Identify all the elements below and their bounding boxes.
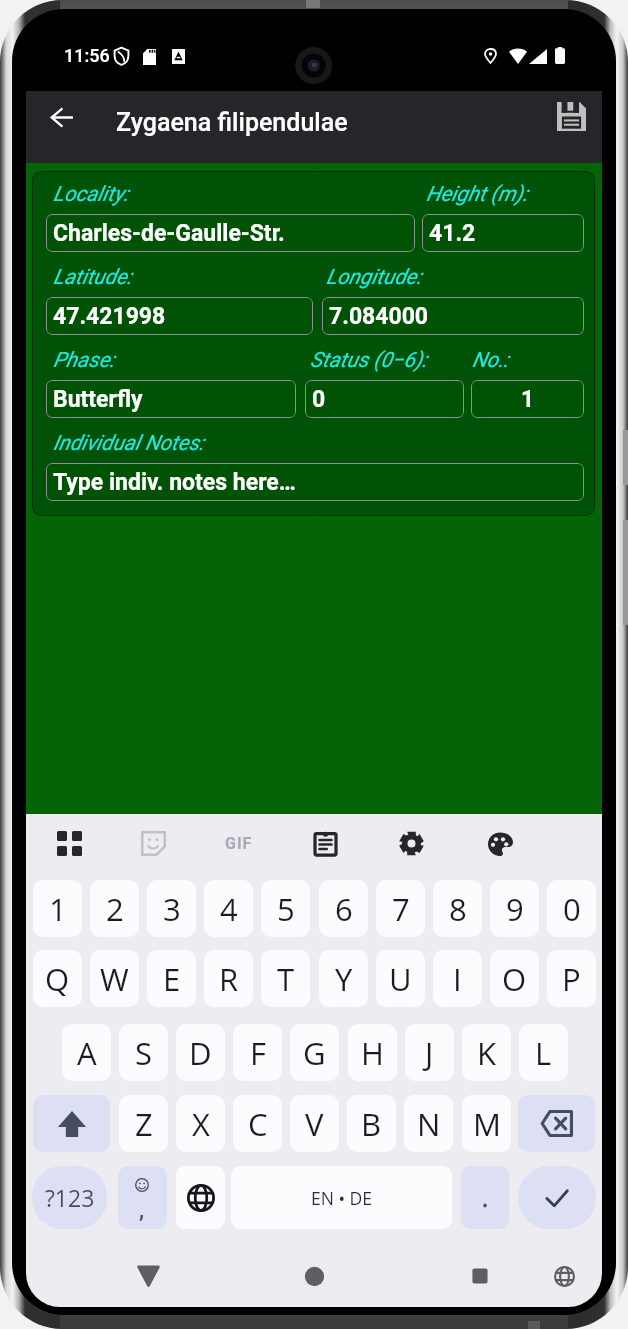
staticText: 4 — [220, 888, 238, 930]
button[interactable]: Charles-de-Gaulle-Str. — [46, 214, 415, 252]
staticText: Y — [335, 958, 353, 1000]
button[interactable]: X — [176, 1095, 225, 1152]
staticText: 1 — [49, 888, 67, 930]
staticText: Phase: — [53, 348, 115, 373]
staticText: . — [482, 1182, 489, 1213]
staticText: W — [100, 958, 129, 1000]
staticText: 2 — [106, 888, 124, 930]
staticText: Individual Notes: — [53, 431, 205, 456]
button[interactable]: I — [433, 950, 482, 1007]
button[interactable]: Stickers — [141, 831, 166, 856]
button[interactable]: 8 — [433, 880, 482, 937]
button[interactable]: F — [233, 1024, 282, 1081]
staticText: R — [219, 958, 239, 1000]
staticText: P — [562, 958, 581, 1000]
button[interactable]: 41.2 — [422, 214, 584, 252]
button[interactable]: Recents — [456, 1252, 504, 1300]
button[interactable]: . — [461, 1166, 509, 1229]
button[interactable]: 47.421998 — [46, 297, 313, 335]
staticText: Q — [45, 958, 70, 1000]
button[interactable]: C — [233, 1095, 282, 1152]
button[interactable]: Butterfly — [46, 380, 296, 418]
button[interactable]: K — [462, 1024, 511, 1081]
button[interactable]: 1 — [471, 380, 584, 418]
staticText: 41.2 — [429, 220, 476, 247]
button[interactable]: P — [547, 950, 596, 1007]
staticText: 0 — [312, 386, 326, 413]
staticText: M — [473, 1103, 501, 1145]
button[interactable]: A — [62, 1024, 111, 1081]
button[interactable]: E — [147, 950, 196, 1007]
button[interactable]: 5 — [261, 880, 310, 937]
button[interactable]: W — [90, 950, 139, 1007]
button[interactable]: Emoji — [118, 1166, 167, 1229]
button[interactable]: Shift — [33, 1095, 110, 1152]
staticText: ?123 — [45, 1182, 95, 1213]
button[interactable]: EN • DE — [231, 1166, 452, 1229]
staticText: , — [139, 1198, 145, 1223]
button[interactable]: O — [490, 950, 539, 1007]
button[interactable]: T — [261, 950, 310, 1007]
staticText: Locality: — [53, 182, 129, 207]
staticText: B — [361, 1103, 382, 1145]
button[interactable]: Z — [119, 1095, 168, 1152]
button[interactable]: Y — [319, 950, 368, 1007]
staticText: 5 — [277, 888, 295, 930]
button[interactable]: H — [348, 1024, 397, 1081]
button[interactable]: 7.084000 — [322, 297, 584, 335]
button[interactable]: 1 — [33, 880, 82, 937]
button[interactable]: J — [405, 1024, 454, 1081]
staticText: 9 — [506, 888, 524, 930]
button[interactable]: S — [119, 1024, 168, 1081]
button[interactable]: 6 — [319, 880, 368, 937]
staticText: EN • DE — [311, 1186, 373, 1210]
staticText: Status (0−6): — [310, 348, 428, 373]
button[interactable]: Change language — [176, 1166, 225, 1229]
staticText: K — [477, 1032, 497, 1074]
staticText: Butterfly — [53, 386, 143, 413]
button[interactable]: Home — [290, 1252, 338, 1300]
button[interactable]: Theme — [488, 831, 513, 856]
button[interactable]: N — [404, 1095, 453, 1152]
staticText: Longitude: — [326, 265, 422, 290]
button[interactable]: 9 — [490, 880, 539, 937]
staticText: C — [248, 1103, 268, 1145]
button[interactable]: G — [290, 1024, 339, 1081]
button[interactable]: 0 — [547, 880, 596, 937]
button[interactable]: Back — [38, 93, 86, 141]
button[interactable]: Enter — [518, 1166, 596, 1229]
button[interactable]: 7 — [376, 880, 425, 937]
button[interactable]: L — [519, 1024, 568, 1081]
staticText: U — [389, 958, 412, 1000]
button[interactable]: M — [462, 1095, 511, 1152]
button[interactable]: Back — [124, 1252, 172, 1300]
button[interactable]: ?123 — [32, 1166, 107, 1229]
button[interactable]: Settings — [399, 831, 424, 856]
button[interactable]: D — [176, 1024, 225, 1081]
staticText: Charles-de-Gaulle-Str. — [53, 220, 285, 247]
button[interactable]: V — [290, 1095, 339, 1152]
button[interactable]: U — [376, 950, 425, 1007]
staticText: N — [417, 1103, 441, 1145]
button[interactable]: Backspace — [518, 1095, 595, 1152]
button[interactable]: R — [204, 950, 253, 1007]
staticText: 6 — [335, 888, 353, 930]
button[interactable]: Switch keyboard — [540, 1252, 588, 1300]
staticText: GIF — [225, 834, 253, 853]
button[interactable]: Type indiv. notes here… — [46, 463, 584, 501]
staticText: H — [361, 1032, 384, 1074]
button[interactable]: B — [347, 1095, 396, 1152]
button[interactable]: Keyboard apps — [57, 831, 82, 856]
button[interactable]: 3 — [147, 880, 196, 937]
button[interactable]: Save — [547, 93, 595, 141]
button[interactable]: 2 — [90, 880, 139, 937]
staticText: 47.421998 — [53, 303, 166, 330]
staticText: Height (m): — [426, 182, 528, 207]
button[interactable]: 4 — [204, 880, 253, 937]
button[interactable]: Clipboard — [313, 831, 338, 856]
button[interactable]: 0 — [305, 380, 464, 418]
button[interactable]: Q — [33, 950, 82, 1007]
staticText: 7.084000 — [329, 303, 429, 330]
staticText: J — [425, 1032, 434, 1074]
button[interactable]: GIF — [214, 831, 264, 856]
